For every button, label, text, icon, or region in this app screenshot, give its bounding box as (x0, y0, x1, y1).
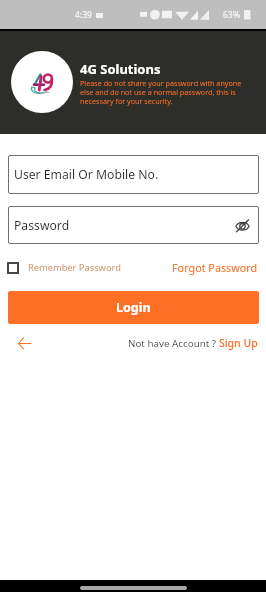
staticText: Remember Password (28, 261, 121, 274)
button[interactable]: Password (8, 206, 259, 244)
staticText: 4G Solutions (80, 60, 161, 78)
staticText: Sign Up (219, 336, 258, 350)
button[interactable]: Back (14, 333, 34, 353)
staticText: Password (14, 217, 70, 234)
button[interactable]: Show password (232, 215, 252, 235)
button[interactable]: Forgot Password (172, 260, 258, 275)
button[interactable]: Not have Account ? (128, 336, 258, 350)
staticText: 63% (223, 9, 240, 21)
staticText: Login (116, 299, 151, 316)
staticText: 4:39 (75, 9, 92, 21)
staticText: User Email Or Mobile No. (14, 166, 159, 183)
button[interactable]: Remember Password (7, 261, 121, 274)
staticText: Please do not share your password with a… (80, 78, 256, 106)
button[interactable]: Login (8, 291, 259, 324)
button[interactable]: User Email Or Mobile No. (8, 155, 259, 194)
staticText: Not have Account ? (128, 337, 219, 350)
